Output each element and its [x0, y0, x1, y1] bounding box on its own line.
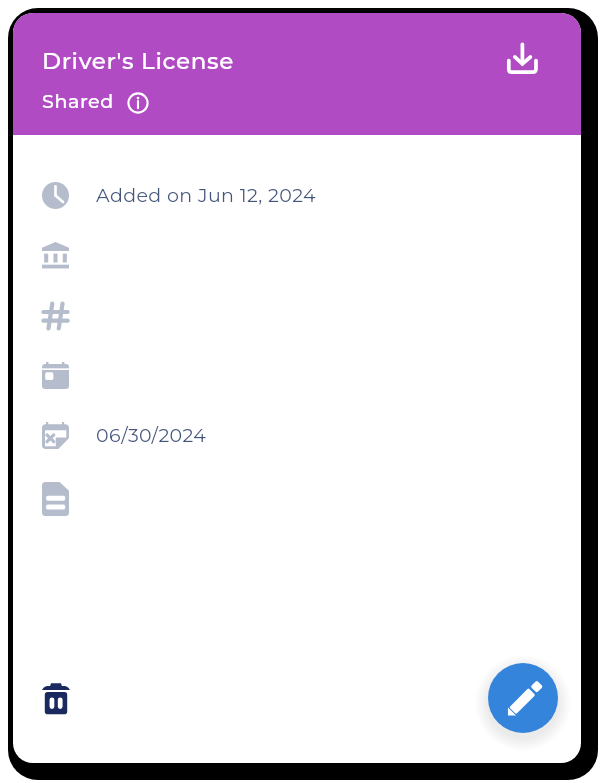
staticText: Added on Jun 12, 2024: [96, 184, 316, 207]
button[interactable]: Edit: [488, 663, 558, 733]
button[interactable]: Document number: [13, 289, 581, 349]
button[interactable]: Notes: [13, 469, 581, 529]
button[interactable]: Info: [126, 91, 150, 115]
staticText: Shared: [42, 90, 114, 113]
button[interactable]: Delete: [33, 675, 78, 723]
button[interactable]: Download: [503, 39, 543, 79]
button[interactable]: Issued on: [13, 349, 581, 409]
button[interactable]: Issuing authority: [13, 229, 581, 289]
button[interactable]: Added on: [13, 169, 581, 229]
staticText: 06/30/2024: [96, 424, 207, 447]
staticText: Driver's License: [42, 47, 235, 75]
button[interactable]: Expires on: [13, 409, 581, 469]
